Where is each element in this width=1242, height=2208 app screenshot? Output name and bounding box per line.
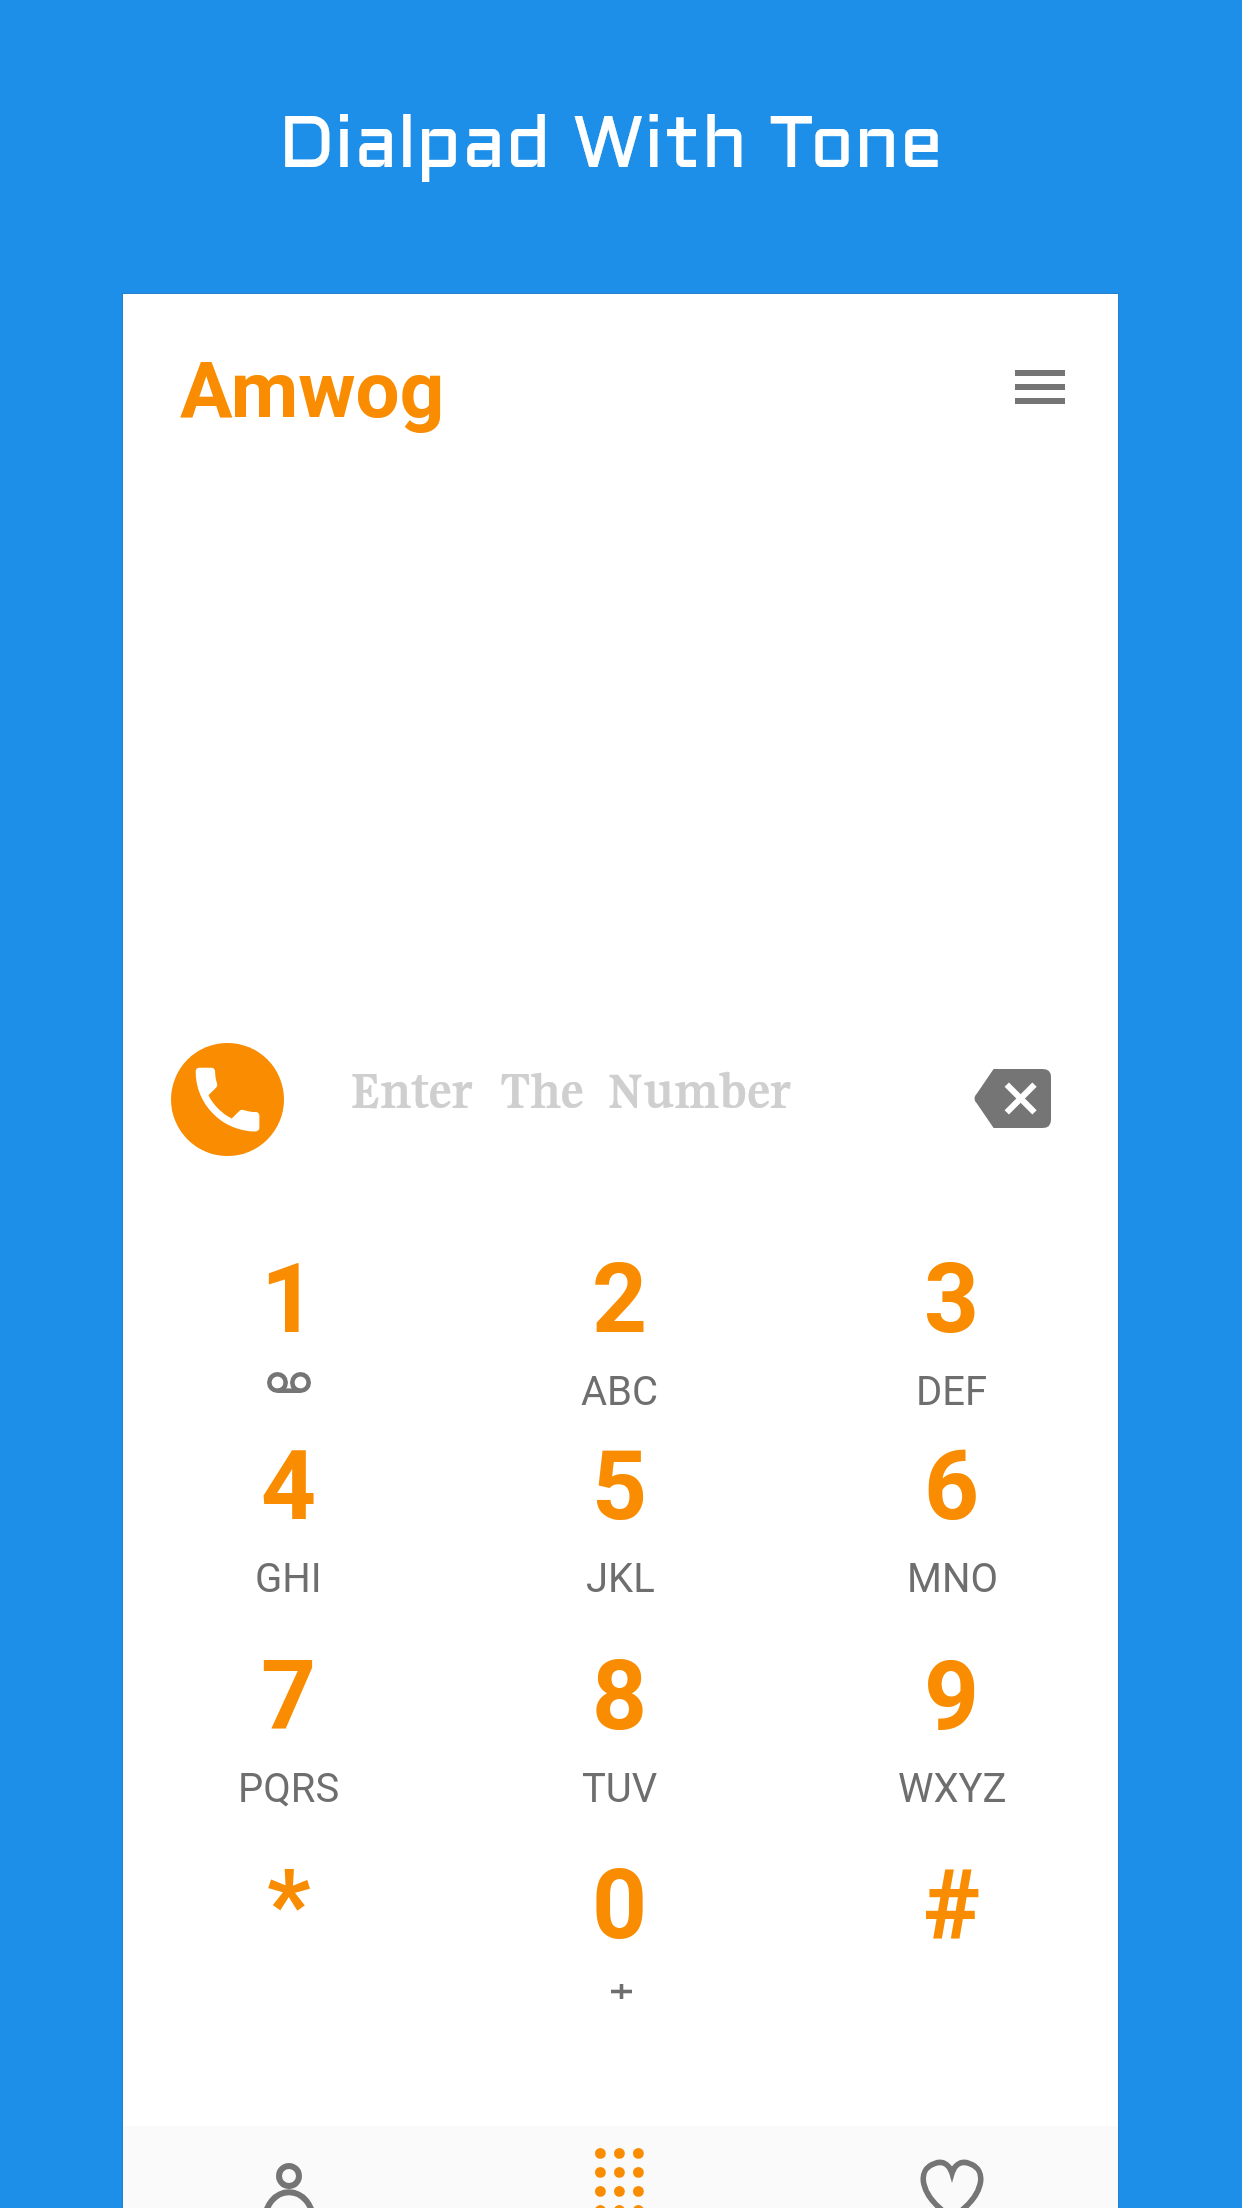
staticText: 0 bbox=[592, 1849, 648, 1962]
button[interactable]: Backspace bbox=[955, 1048, 1071, 1148]
staticText: ABC bbox=[581, 1368, 659, 1415]
button[interactable]: 6 bbox=[786, 1430, 1118, 1620]
staticText: Amwog bbox=[180, 345, 445, 436]
button[interactable]: 3 bbox=[786, 1243, 1118, 1433]
staticText: TUV bbox=[582, 1765, 658, 1812]
button[interactable]: Call bbox=[171, 1043, 284, 1156]
staticText: PQRS bbox=[238, 1765, 340, 1812]
staticText: DEF bbox=[916, 1368, 988, 1415]
button[interactable]: Enter bbox=[350, 1059, 792, 1121]
staticText: Enter bbox=[350, 1059, 473, 1121]
button[interactable]: Favourites bbox=[786, 2126, 1118, 2208]
button[interactable]: 8 bbox=[454, 1640, 786, 1830]
button[interactable]: Amwog bbox=[180, 345, 445, 436]
button[interactable]: 4 bbox=[123, 1430, 454, 1620]
staticText: The bbox=[500, 1059, 584, 1121]
staticText: 8 bbox=[592, 1640, 648, 1753]
button[interactable]: 5 bbox=[454, 1430, 786, 1620]
staticText: 6 bbox=[924, 1430, 980, 1543]
staticText: MNO bbox=[907, 1555, 998, 1602]
staticText: 3 bbox=[924, 1243, 980, 1356]
button[interactable]: Menu bbox=[1000, 347, 1080, 427]
button[interactable]: Dialpad bbox=[454, 2126, 786, 2208]
staticText: Dialpad With Tone bbox=[0, 114, 1232, 182]
staticText: 4 bbox=[261, 1430, 317, 1543]
button[interactable]: Contacts bbox=[123, 2126, 454, 2208]
staticText: 2 bbox=[592, 1243, 648, 1356]
button[interactable]: 9 bbox=[786, 1640, 1118, 1830]
button[interactable]: # bbox=[786, 1849, 1118, 2039]
staticText: WXYZ bbox=[898, 1765, 1007, 1812]
staticText: 5 bbox=[592, 1430, 648, 1543]
staticText: 9 bbox=[924, 1640, 980, 1753]
staticText: # bbox=[923, 1849, 981, 1962]
staticText: Number bbox=[607, 1059, 792, 1121]
staticText: * bbox=[267, 1849, 311, 1962]
button[interactable]: 2 bbox=[454, 1243, 786, 1433]
staticText: GHI bbox=[255, 1555, 322, 1602]
button[interactable]: 0 bbox=[454, 1849, 786, 2039]
button[interactable]: 7 bbox=[123, 1640, 454, 1830]
staticText: 1 bbox=[261, 1243, 317, 1356]
button[interactable]: 1 bbox=[123, 1243, 454, 1433]
staticText: 7 bbox=[261, 1640, 317, 1753]
staticText: JKL bbox=[586, 1555, 655, 1602]
button[interactable]: * bbox=[123, 1849, 454, 2039]
